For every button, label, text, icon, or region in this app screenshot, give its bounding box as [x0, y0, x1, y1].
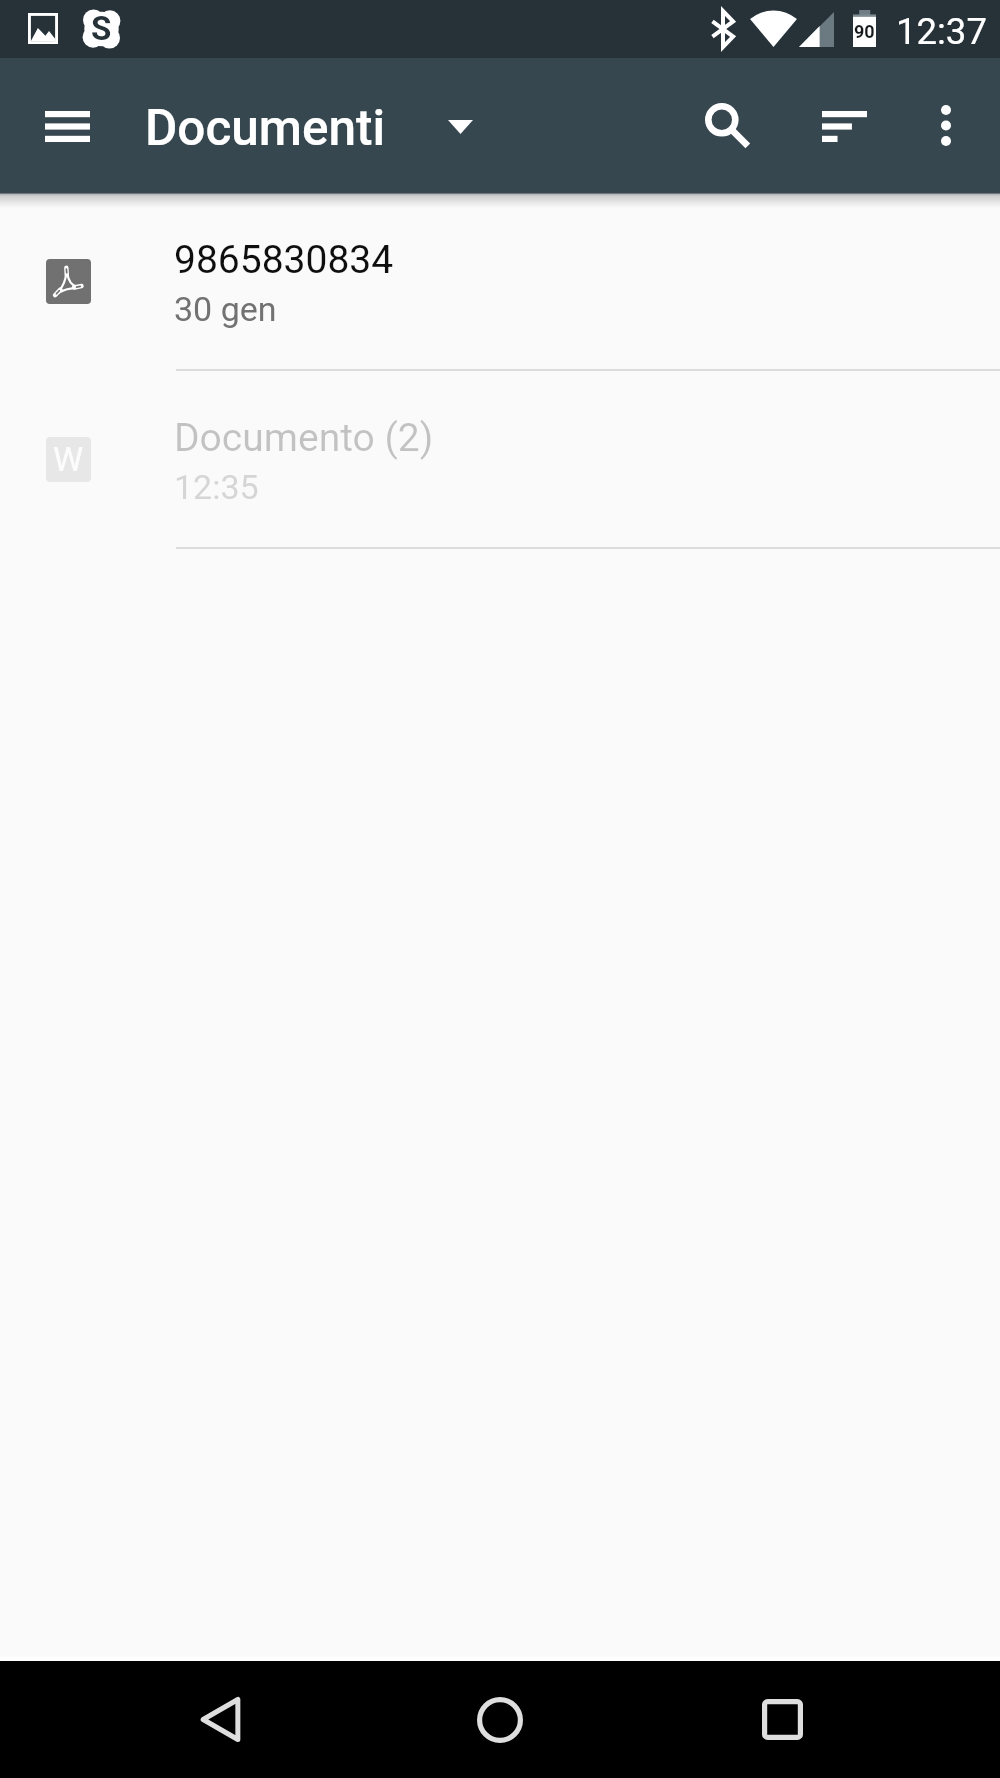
button[interactable]: Home [434, 1661, 566, 1778]
staticText: 9865830834 [174, 237, 394, 283]
staticText: 12:35 [174, 467, 259, 507]
staticText: 30 gen [174, 289, 277, 329]
staticText: Documenti [145, 99, 386, 157]
staticText: Documento (2) [174, 415, 434, 461]
button[interactable]: Change folder [410, 58, 510, 193]
button[interactable]: 9865830834 [0, 193, 1000, 371]
staticText: 12:37 [896, 10, 987, 53]
staticText: 90 [854, 21, 875, 42]
button[interactable]: Open navigation drawer [0, 58, 136, 193]
button[interactable]: Sort [777, 58, 887, 193]
button[interactable]: More options [891, 58, 1000, 193]
staticText: S [91, 9, 112, 48]
button[interactable]: Recent apps [716, 1661, 848, 1778]
button[interactable]: Back [154, 1661, 286, 1778]
button[interactable]: W [0, 371, 1000, 549]
button[interactable]: Search [667, 58, 777, 193]
staticText: W [53, 439, 84, 479]
